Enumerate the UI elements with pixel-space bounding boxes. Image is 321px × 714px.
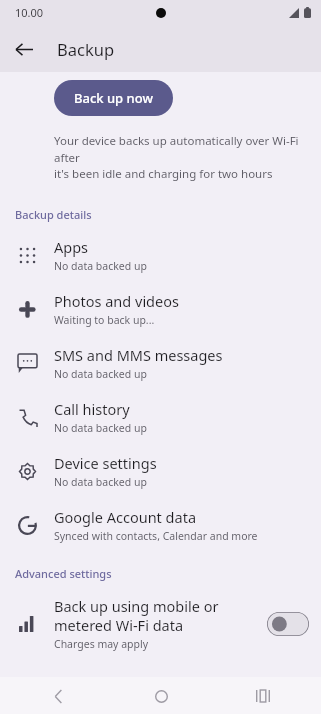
staticText: No data backed up xyxy=(54,367,147,381)
staticText: SMS and MMS messages xyxy=(54,345,223,365)
button[interactable]: Back xyxy=(6,31,42,67)
button[interactable]: Back xyxy=(42,680,74,712)
staticText: Back up using mobile or metered Wi-Fi da… xyxy=(54,596,219,635)
button[interactable]: Device settings xyxy=(0,444,321,498)
button[interactable]: Back up now xyxy=(54,80,173,116)
staticText: Your device backs up automatically over … xyxy=(54,133,309,181)
button[interactable]: Google Account data xyxy=(0,498,321,552)
button[interactable]: Apps xyxy=(0,228,321,282)
button[interactable]: Recent apps xyxy=(247,680,279,712)
staticText: No data backed up xyxy=(54,475,147,489)
staticText: Advanced settings xyxy=(15,566,112,581)
staticText: 10.00 xyxy=(15,5,44,20)
staticText: Backup details xyxy=(15,207,92,222)
button[interactable]: Back up using mobile data toggle xyxy=(267,612,309,636)
staticText: Google Account data xyxy=(54,507,197,527)
staticText: No data backed up xyxy=(54,259,147,273)
staticText: Waiting to back up... xyxy=(54,313,155,327)
button[interactable]: SMS and MMS messages xyxy=(0,336,321,390)
button[interactable]: Photos and videos xyxy=(0,282,321,336)
button[interactable]: Call history xyxy=(0,390,321,444)
button[interactable]: Back up using mobile or metered Wi-Fi da… xyxy=(0,587,321,660)
staticText: Apps xyxy=(54,237,89,257)
staticText: Synced with contacts, Calendar and more xyxy=(54,529,258,543)
staticText: Back up now xyxy=(74,89,153,107)
staticText: Backup xyxy=(57,38,115,60)
staticText: Call history xyxy=(54,399,130,419)
staticText: Device settings xyxy=(54,453,157,473)
staticText: Charges may apply xyxy=(54,637,149,651)
button[interactable]: Home xyxy=(145,680,177,712)
staticText: Photos and videos xyxy=(54,291,179,311)
staticText: No data backed up xyxy=(54,421,147,435)
